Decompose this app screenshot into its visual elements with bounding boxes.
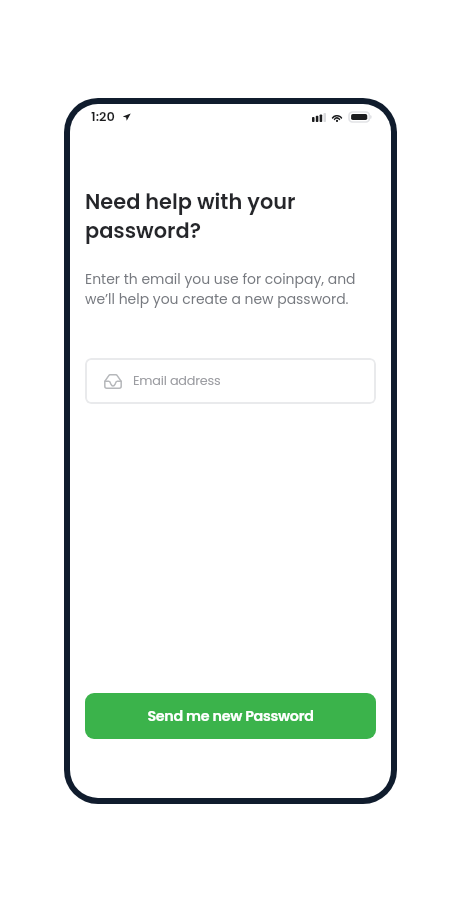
staticText: Send me new Password bbox=[147, 706, 314, 726]
other: Email bbox=[104, 374, 122, 389]
staticText: Enter th email you use for coinpay, and … bbox=[85, 270, 363, 310]
staticText: Email address bbox=[133, 372, 221, 390]
button[interactable]: Send me new Password bbox=[85, 693, 376, 739]
button[interactable]: Email bbox=[85, 358, 376, 404]
staticText: Need help with your password? bbox=[85, 188, 330, 246]
staticText: 1:20 bbox=[91, 107, 115, 125]
